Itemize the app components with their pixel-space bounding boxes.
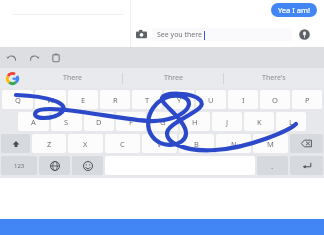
staticText: R [113,95,118,105]
button[interactable]: E [68,90,98,109]
button[interactable]: Z [32,134,66,153]
button[interactable]: G [148,112,178,131]
button[interactable]: U [196,90,226,109]
button[interactable]: Yea I am! [271,3,317,17]
button[interactable]: N [216,134,251,153]
staticText: S [64,117,69,127]
button[interactable]: D [84,112,114,131]
staticText: A [31,117,36,127]
staticText: Three [164,73,183,83]
button[interactable]: L [276,112,306,131]
button[interactable]: See you there [152,28,292,41]
staticText: W [47,95,54,105]
button[interactable]: W [35,90,66,109]
staticText: L [289,117,293,127]
staticText: X [83,139,88,149]
staticText: Yea I am! [278,5,310,15]
staticText: There's [262,73,286,83]
button[interactable]: There's [224,68,324,88]
button[interactable]: Emoji [72,156,103,175]
button[interactable]: M [253,134,288,153]
staticText: J [226,117,229,127]
button[interactable]: B [179,134,214,153]
staticText: N [231,139,237,149]
button[interactable]: H [180,112,210,131]
button[interactable]: Three [123,68,223,88]
button[interactable]: S [51,112,82,131]
staticText: . [271,160,274,171]
staticText: See you there [157,30,203,40]
staticText: Q [15,95,21,105]
button[interactable]: 123 [1,156,37,175]
button[interactable]: Voice input [297,27,312,42]
staticText: T [145,95,150,105]
button[interactable]: V [142,134,177,153]
button[interactable]: Q [2,90,33,109]
button[interactable]: Undo [4,50,20,66]
staticText: I [242,95,245,105]
button[interactable]: K [244,112,274,131]
button[interactable]: O [260,90,290,109]
button[interactable]: Camera [133,26,149,42]
button[interactable]: J [212,112,242,131]
button[interactable]: Enter [290,156,323,175]
staticText: Z [47,139,52,149]
button[interactable]: A [18,112,49,131]
staticText: M [267,139,274,149]
button[interactable]: Redo [26,50,42,66]
staticText: K [257,117,262,127]
button[interactable]: Language [39,156,70,175]
button[interactable]: P [292,90,322,109]
button[interactable]: Google [6,72,18,84]
staticText: E [81,95,86,105]
button[interactable]: Y [164,90,194,109]
staticText: B [194,139,199,149]
button[interactable]: T [132,90,162,109]
staticText: V [157,139,162,149]
button[interactable]: Backspace [290,134,323,153]
staticText: There [63,73,82,83]
staticText: U [208,95,214,105]
button[interactable]: There [22,68,122,88]
button[interactable]: I [228,90,258,109]
staticText: C [120,139,125,149]
button[interactable]: C [105,134,140,153]
button[interactable]: F [116,112,146,131]
staticText: Y [177,95,182,105]
button[interactable]: Shift [1,134,30,153]
staticText: G [160,117,166,127]
staticText: 123 [14,162,25,170]
staticText: P [305,95,310,105]
button[interactable]: Clipboard [48,50,64,66]
button[interactable]: X [68,134,103,153]
staticText: O [272,95,278,105]
staticText: F [129,117,133,127]
staticText: H [192,117,198,127]
button[interactable]: R [100,90,130,109]
staticText: D [96,117,102,127]
